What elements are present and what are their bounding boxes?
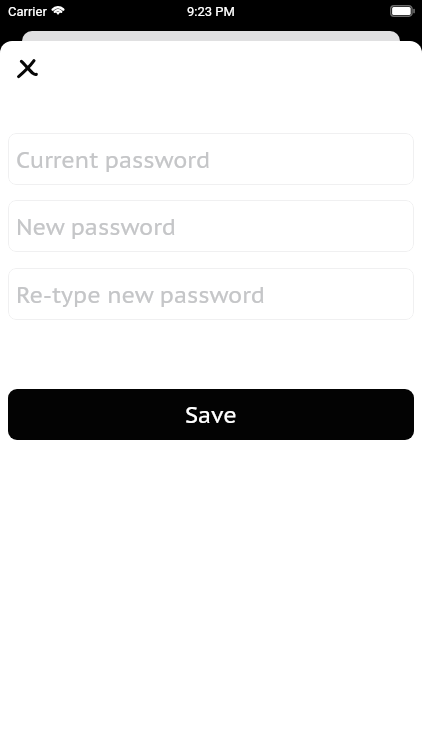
button[interactable]: Current password (8, 133, 414, 185)
staticText: Current password (16, 145, 211, 174)
staticText: New password (16, 212, 176, 241)
staticText: Carrier (8, 4, 47, 19)
staticText: 9:23 PM (187, 4, 235, 19)
staticText: Save (185, 400, 237, 429)
staticText: Re-type new password (16, 280, 265, 309)
button[interactable]: Save (8, 389, 414, 440)
button[interactable]: New password (8, 200, 414, 252)
button[interactable]: Close (8, 49, 46, 87)
button[interactable]: Re-type new password (8, 268, 414, 320)
